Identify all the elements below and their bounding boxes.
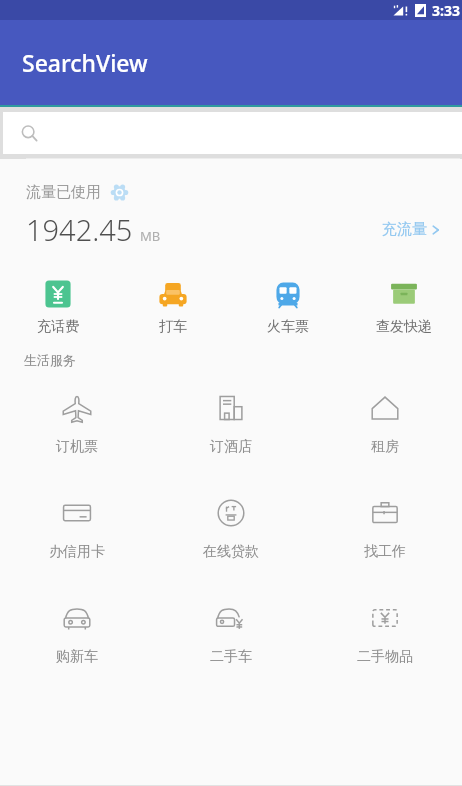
button[interactable]: 租房 bbox=[308, 390, 462, 458]
button[interactable]: 办信用卡 bbox=[0, 495, 154, 563]
button[interactable]: Data settings bbox=[111, 184, 128, 201]
button[interactable]: 充流量 bbox=[382, 220, 440, 239]
staticText: 租房 bbox=[371, 438, 399, 456]
button[interactable]: 订酒店 bbox=[154, 390, 308, 458]
staticText: 查发快递 bbox=[376, 318, 432, 336]
button[interactable]: 找工作 bbox=[308, 495, 462, 563]
button[interactable]: 订机票 bbox=[0, 390, 154, 458]
staticText: 3:33 bbox=[432, 1, 460, 20]
staticText: MB bbox=[140, 227, 161, 245]
staticText: 流量已使用 bbox=[26, 183, 101, 202]
staticText: 二手车 bbox=[210, 648, 252, 666]
staticText: 订酒店 bbox=[210, 438, 252, 456]
button[interactable]: 在线贷款 bbox=[154, 495, 308, 563]
button[interactable]: 打车 bbox=[115, 275, 230, 338]
button[interactable]: 火车票 bbox=[230, 275, 346, 338]
button[interactable]: 查发快递 bbox=[346, 275, 462, 338]
staticText: 二手物品 bbox=[357, 648, 413, 666]
button[interactable]: 购新车 bbox=[0, 600, 154, 668]
button[interactable]: 充话费 bbox=[0, 275, 115, 338]
button[interactable]: 二手物品 bbox=[308, 600, 462, 668]
button[interactable]: 二手车 bbox=[154, 600, 308, 668]
staticText: SearchView bbox=[22, 47, 148, 78]
staticText: 找工作 bbox=[364, 543, 406, 561]
staticText: 充话费 bbox=[37, 318, 79, 336]
staticText: 生活服务 bbox=[24, 352, 76, 368]
staticText: 订机票 bbox=[56, 438, 98, 456]
staticText: 1942.45 bbox=[26, 210, 133, 249]
staticText: 购新车 bbox=[56, 648, 98, 666]
staticText: 在线贷款 bbox=[203, 543, 259, 561]
button[interactable]: Search bbox=[3, 112, 462, 154]
staticText: 充流量 bbox=[382, 220, 427, 239]
staticText: 办信用卡 bbox=[49, 543, 105, 561]
staticText: 火车票 bbox=[267, 318, 309, 336]
staticText: 打车 bbox=[159, 318, 187, 336]
